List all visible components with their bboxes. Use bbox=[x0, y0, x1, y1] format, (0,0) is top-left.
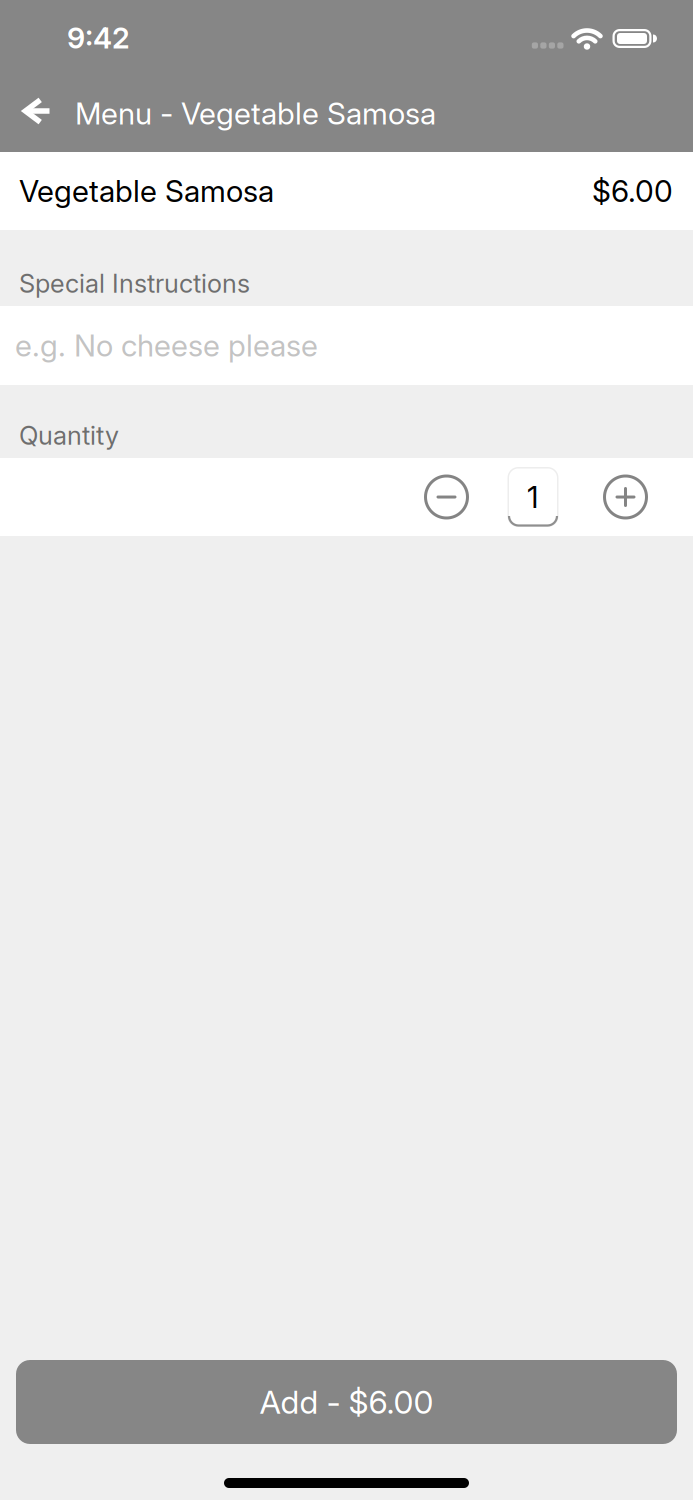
staticText: 9:42 bbox=[67, 20, 130, 56]
staticText: Vegetable Samosa bbox=[19, 173, 274, 209]
button[interactable]: Decrease quantity bbox=[424, 474, 469, 519]
staticText: Menu - Vegetable Samosa bbox=[75, 95, 436, 132]
button[interactable]: Increase quantity bbox=[603, 474, 648, 519]
button[interactable]: Quantity bbox=[507, 467, 558, 527]
staticText: e.g. No cheese please bbox=[15, 327, 318, 364]
staticText: 1 bbox=[527, 479, 539, 515]
button[interactable]: Back bbox=[0, 97, 53, 129]
staticText: Add - $6.00 bbox=[259, 1383, 433, 1421]
staticText: Special Instructions bbox=[19, 268, 250, 299]
button[interactable]: Special instructions bbox=[0, 306, 693, 385]
staticText: Quantity bbox=[19, 420, 119, 451]
button[interactable]: Add - $6.00 bbox=[16, 1360, 677, 1444]
staticText: $6.00 bbox=[592, 173, 673, 209]
